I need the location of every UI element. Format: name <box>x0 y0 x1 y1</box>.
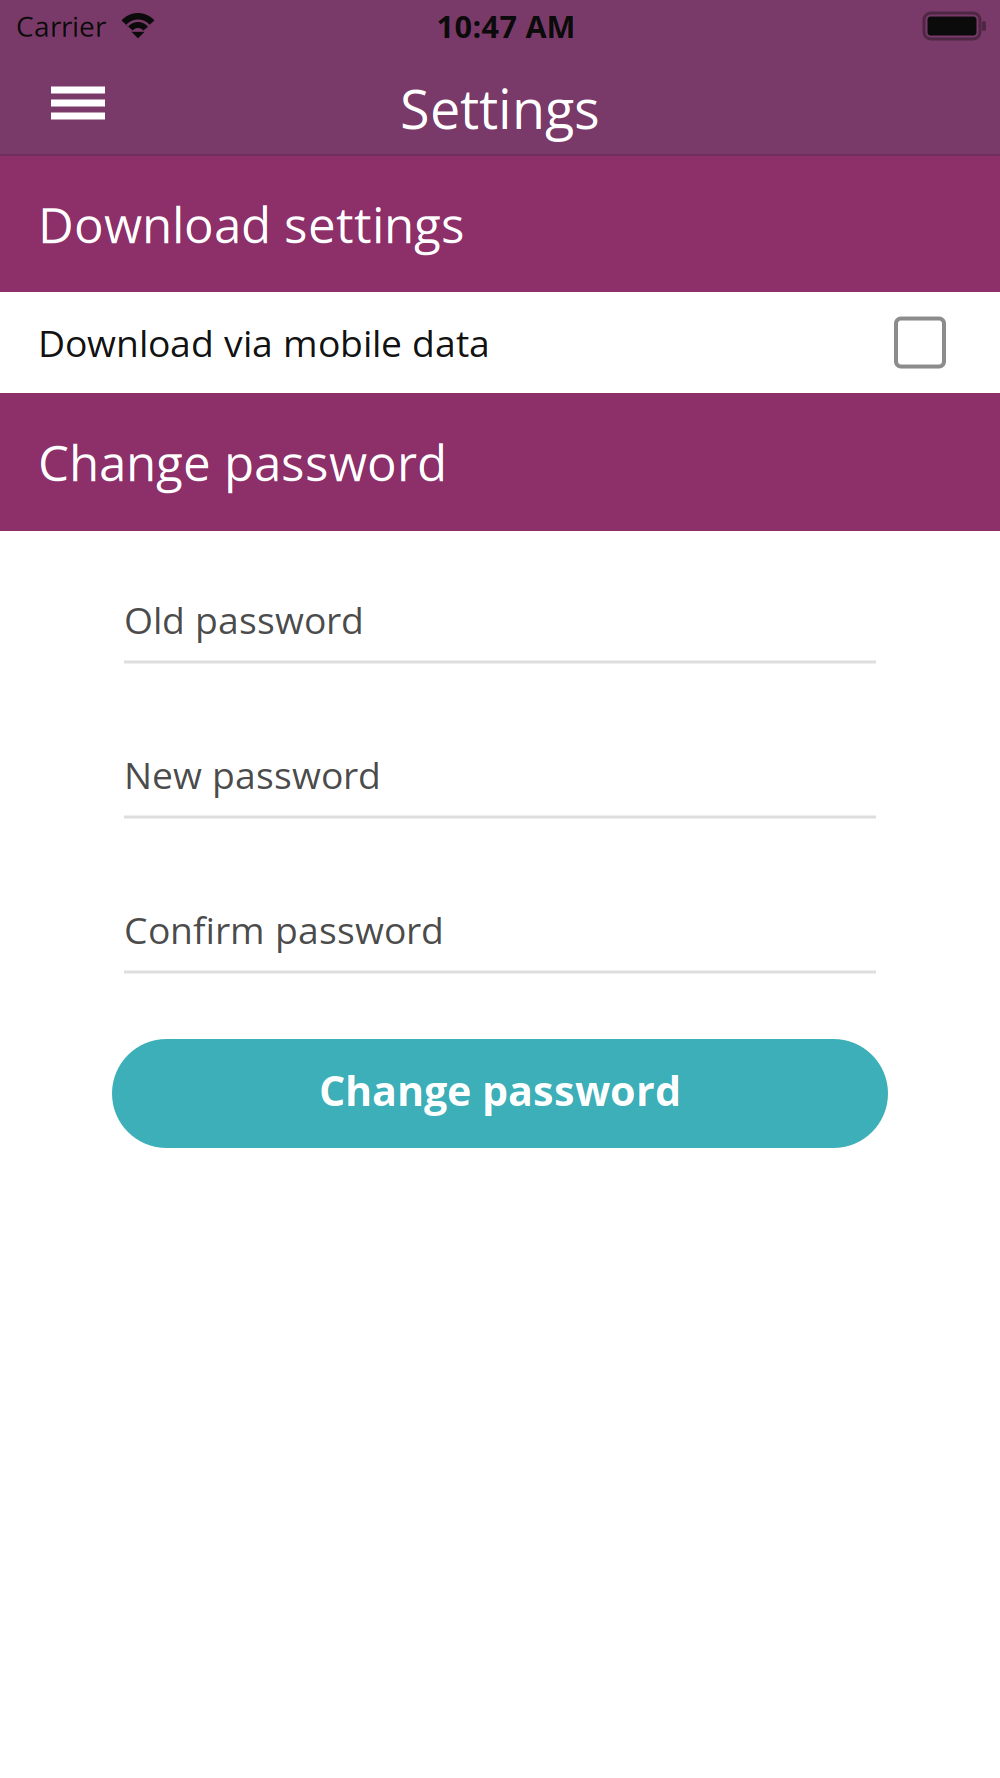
staticText: Change password <box>38 428 447 496</box>
staticText: New password <box>124 749 381 800</box>
button[interactable]: Confirm password <box>124 903 876 974</box>
staticText: Change password <box>319 1062 681 1118</box>
staticText: Download via mobile data <box>38 317 490 368</box>
staticText: Carrier <box>16 7 106 45</box>
button[interactable]: Old password <box>124 593 876 664</box>
staticText: 10:47 AM <box>436 5 575 47</box>
staticText: Settings <box>400 71 600 145</box>
button[interactable]: Menu <box>0 51 156 154</box>
button[interactable]: New password <box>124 748 876 819</box>
button[interactable]: Download via mobile data <box>0 292 1000 393</box>
button[interactable]: Change password <box>112 1039 888 1148</box>
staticText: Old password <box>124 594 364 645</box>
staticText: Download settings <box>38 190 465 258</box>
staticText: Confirm password <box>124 904 444 955</box>
